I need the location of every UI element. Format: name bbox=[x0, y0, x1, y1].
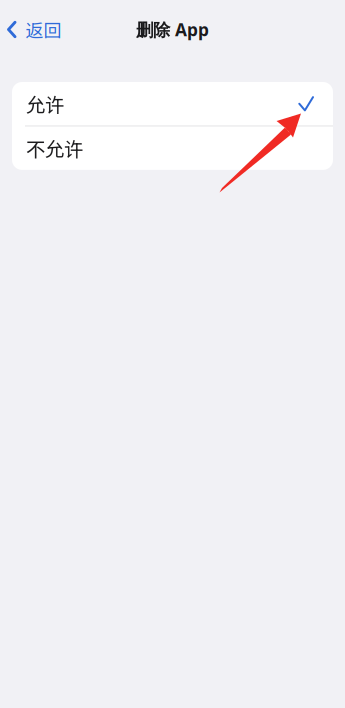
staticText: 允许 bbox=[26, 90, 64, 118]
staticText: 删除 App bbox=[136, 18, 209, 41]
staticText: 返回 bbox=[25, 16, 61, 43]
staticText: 不允许 bbox=[26, 134, 83, 162]
button[interactable]: 允许 bbox=[12, 82, 333, 125]
button[interactable]: 不允许 bbox=[12, 126, 333, 170]
button[interactable]: 返回 bbox=[0, 10, 71, 49]
